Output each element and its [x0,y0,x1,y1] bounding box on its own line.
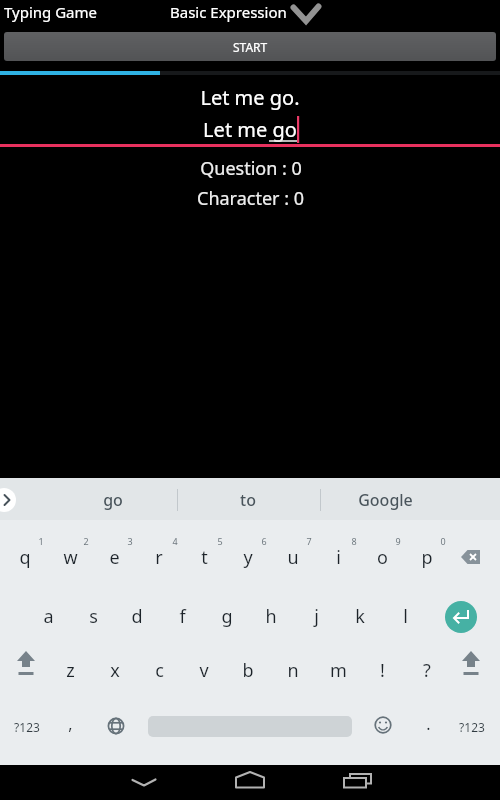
button[interactable]: g [205,596,249,636]
button[interactable]: q [3,537,47,577]
staticText: 7 [306,535,312,547]
button[interactable]: ! [360,650,404,690]
button[interactable]: Google [325,483,445,517]
staticText: h [265,604,277,629]
staticText: START [233,39,268,55]
button[interactable]: ?123 [3,707,51,747]
button[interactable]: w [48,537,92,577]
staticText: n [287,658,299,683]
staticText: ?123 [14,719,40,735]
button[interactable] [338,765,378,800]
button[interactable]: d [115,596,159,636]
staticText: 4 [172,535,178,547]
button[interactable] [450,537,498,577]
staticText: i [336,545,341,570]
button[interactable] [4,643,48,687]
button[interactable]: s [71,596,115,636]
staticText: p [421,545,433,570]
staticText: j [314,604,319,629]
staticText: k [355,604,365,629]
staticText: Let me go. [200,84,300,111]
button[interactable] [449,643,493,687]
button[interactable]: r [137,537,181,577]
button[interactable]: a [26,596,70,636]
button[interactable]: l [383,596,427,636]
button[interactable]: b [226,650,270,690]
staticText: Question : 0 [200,156,302,181]
staticText: z [66,658,75,683]
button[interactable]: k [338,596,382,636]
button[interactable] [0,488,16,512]
button[interactable]: x [93,650,137,690]
staticText: t [201,545,208,570]
staticText: o [377,545,388,570]
button[interactable]: y [226,537,270,577]
staticText: . [426,713,431,735]
staticText: q [19,545,31,570]
staticText: e [109,545,120,570]
button[interactable]: ? [405,650,449,690]
button[interactable]: Basic Expression [165,0,330,30]
staticText: 8 [351,535,357,547]
button[interactable]: f [160,596,204,636]
button[interactable]: j [294,596,338,636]
staticText: ? [423,658,431,683]
button[interactable]: z [48,650,92,690]
staticText: b [242,658,254,683]
staticText: 0 [440,535,446,547]
button[interactable]: v [182,650,226,690]
staticText: g [221,604,233,629]
staticText: Typing Game [4,2,98,22]
button[interactable]: go [63,483,163,517]
staticText: Basic Expression [170,2,287,22]
staticText: u [287,545,299,570]
staticText: 9 [395,535,401,547]
staticText: m [330,658,347,683]
button[interactable] [229,765,269,800]
button[interactable]: u [271,537,315,577]
staticText: c [155,658,164,683]
staticText: , [68,713,73,735]
button[interactable] [445,601,477,633]
staticText: Character : 0 [197,186,304,211]
staticText: v [199,658,209,683]
staticText: ?123 [459,719,485,735]
staticText: to [240,489,256,511]
staticText: r [155,545,163,570]
staticText: Let me go [203,116,297,143]
button[interactable]: ?123 [448,707,496,747]
staticText: f [179,604,186,629]
button[interactable] [95,707,135,747]
button[interactable]: c [137,650,181,690]
button[interactable]: o [360,537,404,577]
button[interactable]: h [249,596,293,636]
button[interactable]: . [413,704,443,744]
button[interactable] [363,705,403,745]
staticText: a [43,604,54,629]
staticText: x [110,658,120,683]
staticText: 5 [217,535,223,547]
staticText: go [103,489,123,511]
button[interactable]: t [182,537,226,577]
staticText: l [403,604,408,629]
button[interactable]: e [92,537,136,577]
staticText: d [131,604,143,629]
staticText: 3 [127,535,133,547]
button[interactable]: , [50,704,90,744]
button[interactable]: i [316,537,360,577]
button[interactable]: START [4,32,496,61]
staticText: Google [358,489,413,511]
button[interactable]: n [271,650,315,690]
staticText: 2 [83,535,89,547]
staticText: w [63,545,78,570]
staticText: y [243,545,253,570]
button[interactable] [124,765,164,800]
staticText: 6 [261,535,267,547]
button[interactable]: p [405,537,449,577]
button[interactable]: m [316,650,360,690]
button[interactable]: to [198,483,298,517]
staticText: ! [380,658,385,683]
staticText: s [89,604,98,629]
staticText: 1 [38,535,44,547]
